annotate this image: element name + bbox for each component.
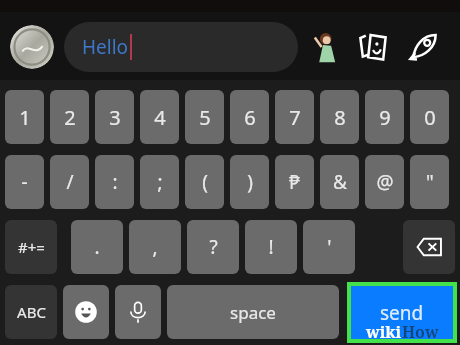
button[interactable]: , [129, 220, 181, 274]
button[interactable]: 0 [410, 90, 449, 144]
staticText: 9 [379, 104, 391, 131]
button[interactable]: 1 [5, 90, 44, 144]
button[interactable]: send [351, 286, 453, 339]
staticText: 8 [334, 104, 346, 131]
button[interactable]: & [320, 155, 359, 209]
button[interactable]: ) [230, 155, 269, 209]
button[interactable]: - [5, 155, 44, 209]
staticText: " [426, 169, 434, 195]
button[interactable]: ! [245, 220, 297, 274]
staticText: , [152, 234, 158, 260]
staticText: ) [247, 169, 253, 195]
staticText: How [402, 321, 439, 343]
button[interactable]: " [410, 155, 449, 209]
button[interactable]: . [71, 220, 123, 274]
button[interactable]: 7 [275, 90, 314, 144]
button[interactable]: Voice input [115, 285, 161, 339]
staticText: ABC [17, 302, 46, 322]
staticText: wiki [366, 321, 402, 343]
button[interactable]: Hello [64, 22, 298, 72]
button[interactable]: Photos [352, 26, 394, 68]
staticText: 5 [199, 104, 211, 131]
button[interactable]: / [50, 155, 89, 209]
button[interactable]: Emoji [63, 285, 109, 339]
staticText: ; [157, 169, 163, 195]
button[interactable]: 4 [140, 90, 179, 144]
staticText: send [380, 300, 424, 326]
button[interactable]: 9 [365, 90, 404, 144]
button[interactable]: 3 [95, 90, 134, 144]
staticText: ( [202, 169, 208, 195]
button[interactable]: 8 [320, 90, 359, 144]
staticText: - [21, 169, 28, 195]
button[interactable]: 5 [185, 90, 224, 144]
button[interactable]: #+= [5, 220, 57, 274]
button[interactable]: Backspace [403, 220, 455, 274]
staticText: ₱ [289, 169, 300, 195]
button[interactable]: 6 [230, 90, 269, 144]
button[interactable]: Apps [402, 26, 444, 68]
button[interactable]: 2 [50, 90, 89, 144]
staticText: ! [268, 234, 274, 260]
button[interactable]: Stickers [304, 26, 346, 68]
button[interactable]: space [167, 285, 339, 339]
staticText: & [333, 169, 347, 195]
staticText: 2 [64, 104, 76, 131]
button[interactable]: ' [303, 220, 355, 274]
staticText: Hello [82, 34, 129, 60]
staticText: . [94, 234, 100, 260]
staticText: space [230, 301, 276, 324]
staticText: 0 [424, 104, 436, 131]
staticText: #+= [18, 237, 45, 257]
staticText: @ [376, 169, 394, 195]
button[interactable]: Profile avatar [10, 25, 54, 69]
staticText: ? [209, 234, 218, 260]
staticText: 1 [19, 104, 31, 131]
staticText: 4 [154, 104, 166, 131]
button[interactable]: ; [140, 155, 179, 209]
staticText: 6 [244, 104, 256, 131]
staticText: / [66, 169, 74, 195]
button[interactable]: ( [185, 155, 224, 209]
button[interactable]: @ [365, 155, 404, 209]
button[interactable]: : [95, 155, 134, 209]
staticText: 7 [289, 104, 301, 131]
button[interactable]: ? [187, 220, 239, 274]
button[interactable]: ₱ [275, 155, 314, 209]
staticText: ' [327, 234, 332, 260]
staticText: : [112, 169, 118, 195]
button[interactable]: ABC [5, 285, 57, 339]
staticText: 3 [109, 104, 121, 131]
